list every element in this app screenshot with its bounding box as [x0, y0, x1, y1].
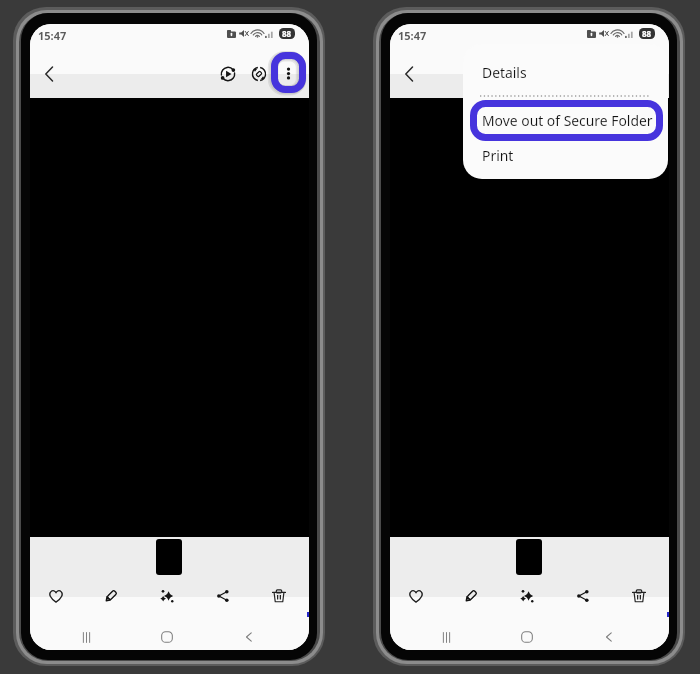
button[interactable]: Delete	[623, 580, 655, 612]
button[interactable]: Details	[463, 50, 668, 94]
button[interactable]: Delete	[263, 580, 295, 612]
button[interactable]: Home	[150, 620, 184, 650]
button[interactable]: Share	[567, 580, 599, 612]
button[interactable]: Edit	[455, 580, 487, 612]
button[interactable]: Back	[592, 620, 626, 650]
staticText: Move out of Secure Folder	[482, 111, 653, 130]
button[interactable]: Auto rotate	[243, 58, 275, 90]
button[interactable]: Current photo	[516, 539, 542, 575]
staticText: Print	[482, 146, 514, 165]
staticText: 15:47	[38, 28, 67, 43]
button[interactable]: Move out of Secure Folder	[463, 98, 668, 142]
button[interactable]: Favourite	[400, 580, 432, 612]
button[interactable]: Home	[510, 620, 544, 650]
button[interactable]: AI enhance	[151, 580, 183, 612]
button[interactable]: Back	[232, 620, 266, 650]
button[interactable]: AI enhance	[511, 580, 543, 612]
button[interactable]: Edit	[95, 580, 127, 612]
button[interactable]: Favourite	[40, 580, 72, 612]
button[interactable]: Recents	[429, 620, 463, 650]
button[interactable]: Current photo	[156, 539, 182, 575]
button[interactable]: Recents	[69, 620, 103, 650]
button[interactable]: Share	[207, 580, 239, 612]
button[interactable]: Motion photo	[212, 58, 244, 90]
staticText: 15:47	[398, 28, 427, 43]
staticText: 88	[642, 28, 652, 39]
staticText: 88	[282, 28, 292, 39]
button[interactable]: Back	[393, 58, 425, 90]
button[interactable]: More options	[272, 57, 304, 89]
button[interactable]: Back	[33, 58, 65, 90]
button[interactable]: Print	[463, 133, 668, 177]
staticText: Details	[482, 63, 527, 82]
